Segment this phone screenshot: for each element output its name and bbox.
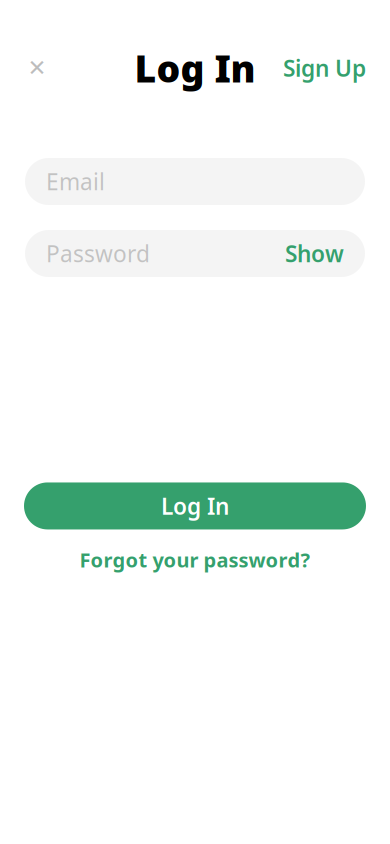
button[interactable]: Log In xyxy=(24,482,366,529)
button[interactable]: Sign Up xyxy=(279,47,370,89)
staticText: Email xyxy=(46,166,105,196)
staticText: Log In xyxy=(161,491,229,521)
button[interactable]: Close xyxy=(20,51,54,85)
staticText: Password xyxy=(46,238,150,268)
staticText: Log In xyxy=(134,43,255,93)
staticText: Forgot your password? xyxy=(79,546,310,573)
staticText: Sign Up xyxy=(283,53,366,83)
staticText: ✕ xyxy=(27,55,46,81)
button[interactable]: Forgot your password? xyxy=(71,542,318,577)
staticText: Show xyxy=(285,238,344,268)
button[interactable]: Show xyxy=(285,238,344,268)
button[interactable]: Email xyxy=(25,158,365,205)
